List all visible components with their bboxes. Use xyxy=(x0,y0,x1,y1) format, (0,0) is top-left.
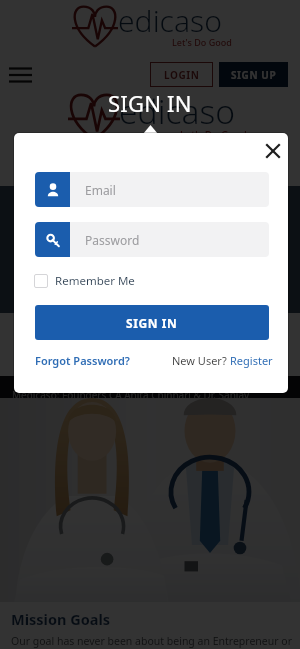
staticText: Medicaso: Founders CA Anita Chinnari & D… xyxy=(12,388,250,402)
staticText: Email xyxy=(85,182,116,198)
staticText: Remember Me xyxy=(55,273,135,289)
staticText: LOGIN xyxy=(164,68,200,82)
button[interactable]: SIGN IN xyxy=(35,305,269,340)
staticText: Password xyxy=(85,232,140,248)
button[interactable]: SIGN UP xyxy=(219,62,288,87)
button[interactable]: LOGIN xyxy=(150,62,213,87)
staticText: Let's Do Good xyxy=(180,128,247,142)
button[interactable]: Remember Me xyxy=(34,273,135,289)
staticText: Mission Goals xyxy=(11,609,111,629)
staticText: SIGN IN xyxy=(126,315,178,331)
button[interactable]: Close dialog xyxy=(259,137,286,164)
staticText: edicaso xyxy=(118,0,222,41)
button[interactable]: Register xyxy=(230,353,273,368)
button[interactable]: Forgot Password? xyxy=(35,353,130,368)
staticText: SIGN IN xyxy=(108,88,192,118)
staticText: New User? xyxy=(172,353,230,368)
button[interactable]: Menu xyxy=(9,67,32,83)
staticText: SIGN UP xyxy=(231,68,277,82)
staticText: edicaso xyxy=(119,88,235,134)
staticText: Our goal has never been about being an E… xyxy=(11,634,292,648)
staticText: Let's Do Good xyxy=(172,36,232,48)
